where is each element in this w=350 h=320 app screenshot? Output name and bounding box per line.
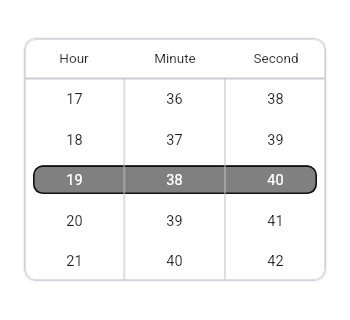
- staticText: 38: [166, 172, 183, 189]
- button[interactable]: 41: [225, 201, 326, 241]
- button[interactable]: 17: [24, 79, 124, 119]
- button[interactable]: 36: [124, 79, 225, 119]
- staticText: 39: [267, 132, 284, 149]
- staticText: 40: [267, 172, 284, 189]
- button[interactable]: 39: [124, 201, 225, 241]
- staticText: 21: [66, 253, 83, 270]
- staticText: Hour: [59, 50, 89, 66]
- button[interactable]: Hour: [24, 38, 124, 78]
- button[interactable]: 21: [24, 241, 124, 281]
- button[interactable]: 40: [225, 160, 326, 200]
- button[interactable]: 20: [24, 201, 124, 241]
- button[interactable]: Second: [225, 38, 326, 78]
- button[interactable]: 37: [124, 120, 225, 160]
- staticText: 37: [166, 132, 183, 149]
- button[interactable]: 40: [124, 241, 225, 281]
- button[interactable]: 42: [225, 241, 326, 281]
- staticText: 36: [166, 91, 183, 108]
- staticText: 39: [166, 213, 183, 230]
- staticText: 17: [66, 91, 83, 108]
- staticText: Second: [253, 50, 299, 66]
- staticText: 38: [267, 91, 284, 108]
- staticText: 41: [267, 213, 284, 230]
- staticText: 19: [66, 172, 83, 189]
- button[interactable]: 38: [124, 160, 225, 200]
- button[interactable]: 38: [225, 79, 326, 119]
- staticText: 42: [267, 253, 284, 270]
- button[interactable]: 19: [24, 160, 124, 200]
- button[interactable]: Minute: [124, 38, 225, 78]
- staticText: Minute: [154, 50, 196, 66]
- staticText: 40: [166, 253, 183, 270]
- staticText: 18: [66, 132, 83, 149]
- staticText: 20: [66, 213, 83, 230]
- button[interactable]: 39: [225, 120, 326, 160]
- button[interactable]: 18: [24, 120, 124, 160]
